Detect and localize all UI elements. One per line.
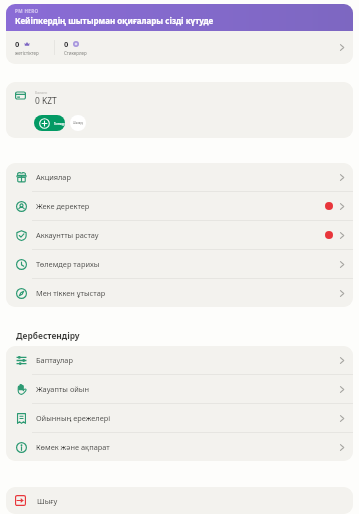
button[interactable]: More <box>70 115 86 131</box>
staticText: Төлемдер тарихы <box>36 259 100 269</box>
staticText: Толтыру <box>54 122 65 126</box>
staticText: 0 <box>15 39 20 49</box>
button[interactable]: Жауапты ойын <box>6 375 353 403</box>
staticText: Баланс <box>35 90 48 95</box>
staticText: PM HERO <box>15 8 39 14</box>
button[interactable]: Ойынның ережелері <box>6 404 353 432</box>
staticText: Ойынның ережелері <box>36 413 111 423</box>
staticText: Стикерлер <box>64 50 87 56</box>
button[interactable]: Акциялар <box>6 163 353 191</box>
staticText: 0 <box>64 39 69 49</box>
staticText: Жеке деректер <box>36 201 90 211</box>
staticText: Акциялар <box>36 172 71 182</box>
button[interactable]: Аккаунтты растау <box>6 221 353 249</box>
staticText: Баптаулар <box>36 355 73 365</box>
staticText: Шығару <box>73 121 83 125</box>
button[interactable]: Көмек және ақпарат <box>6 433 353 461</box>
staticText: Мен тіккен ұтыстар <box>36 288 106 298</box>
staticText: жетістіктер <box>15 50 39 56</box>
staticText: Жауапты ойын <box>36 384 90 394</box>
staticText: 0 KZT <box>35 95 57 106</box>
button[interactable]: Мен тіккен ұтыстар <box>6 279 353 307</box>
staticText: Шығу <box>37 496 58 506</box>
button[interactable]: PM HERO <box>6 4 353 64</box>
button[interactable]: Шығу <box>6 487 353 514</box>
staticText: Аккаунтты растау <box>36 230 99 240</box>
button[interactable]: Баптаулар <box>6 346 353 374</box>
staticText: Дербестендіру <box>16 330 80 341</box>
button[interactable]: Жеке деректер <box>6 192 353 220</box>
staticText: Кейіпкердің шытырман оқиғалары сізді күт… <box>15 15 214 26</box>
staticText: Көмек және ақпарат <box>36 442 110 452</box>
button[interactable]: Төлемдер тарихы <box>6 250 353 278</box>
button[interactable]: Толтыру <box>34 115 65 131</box>
